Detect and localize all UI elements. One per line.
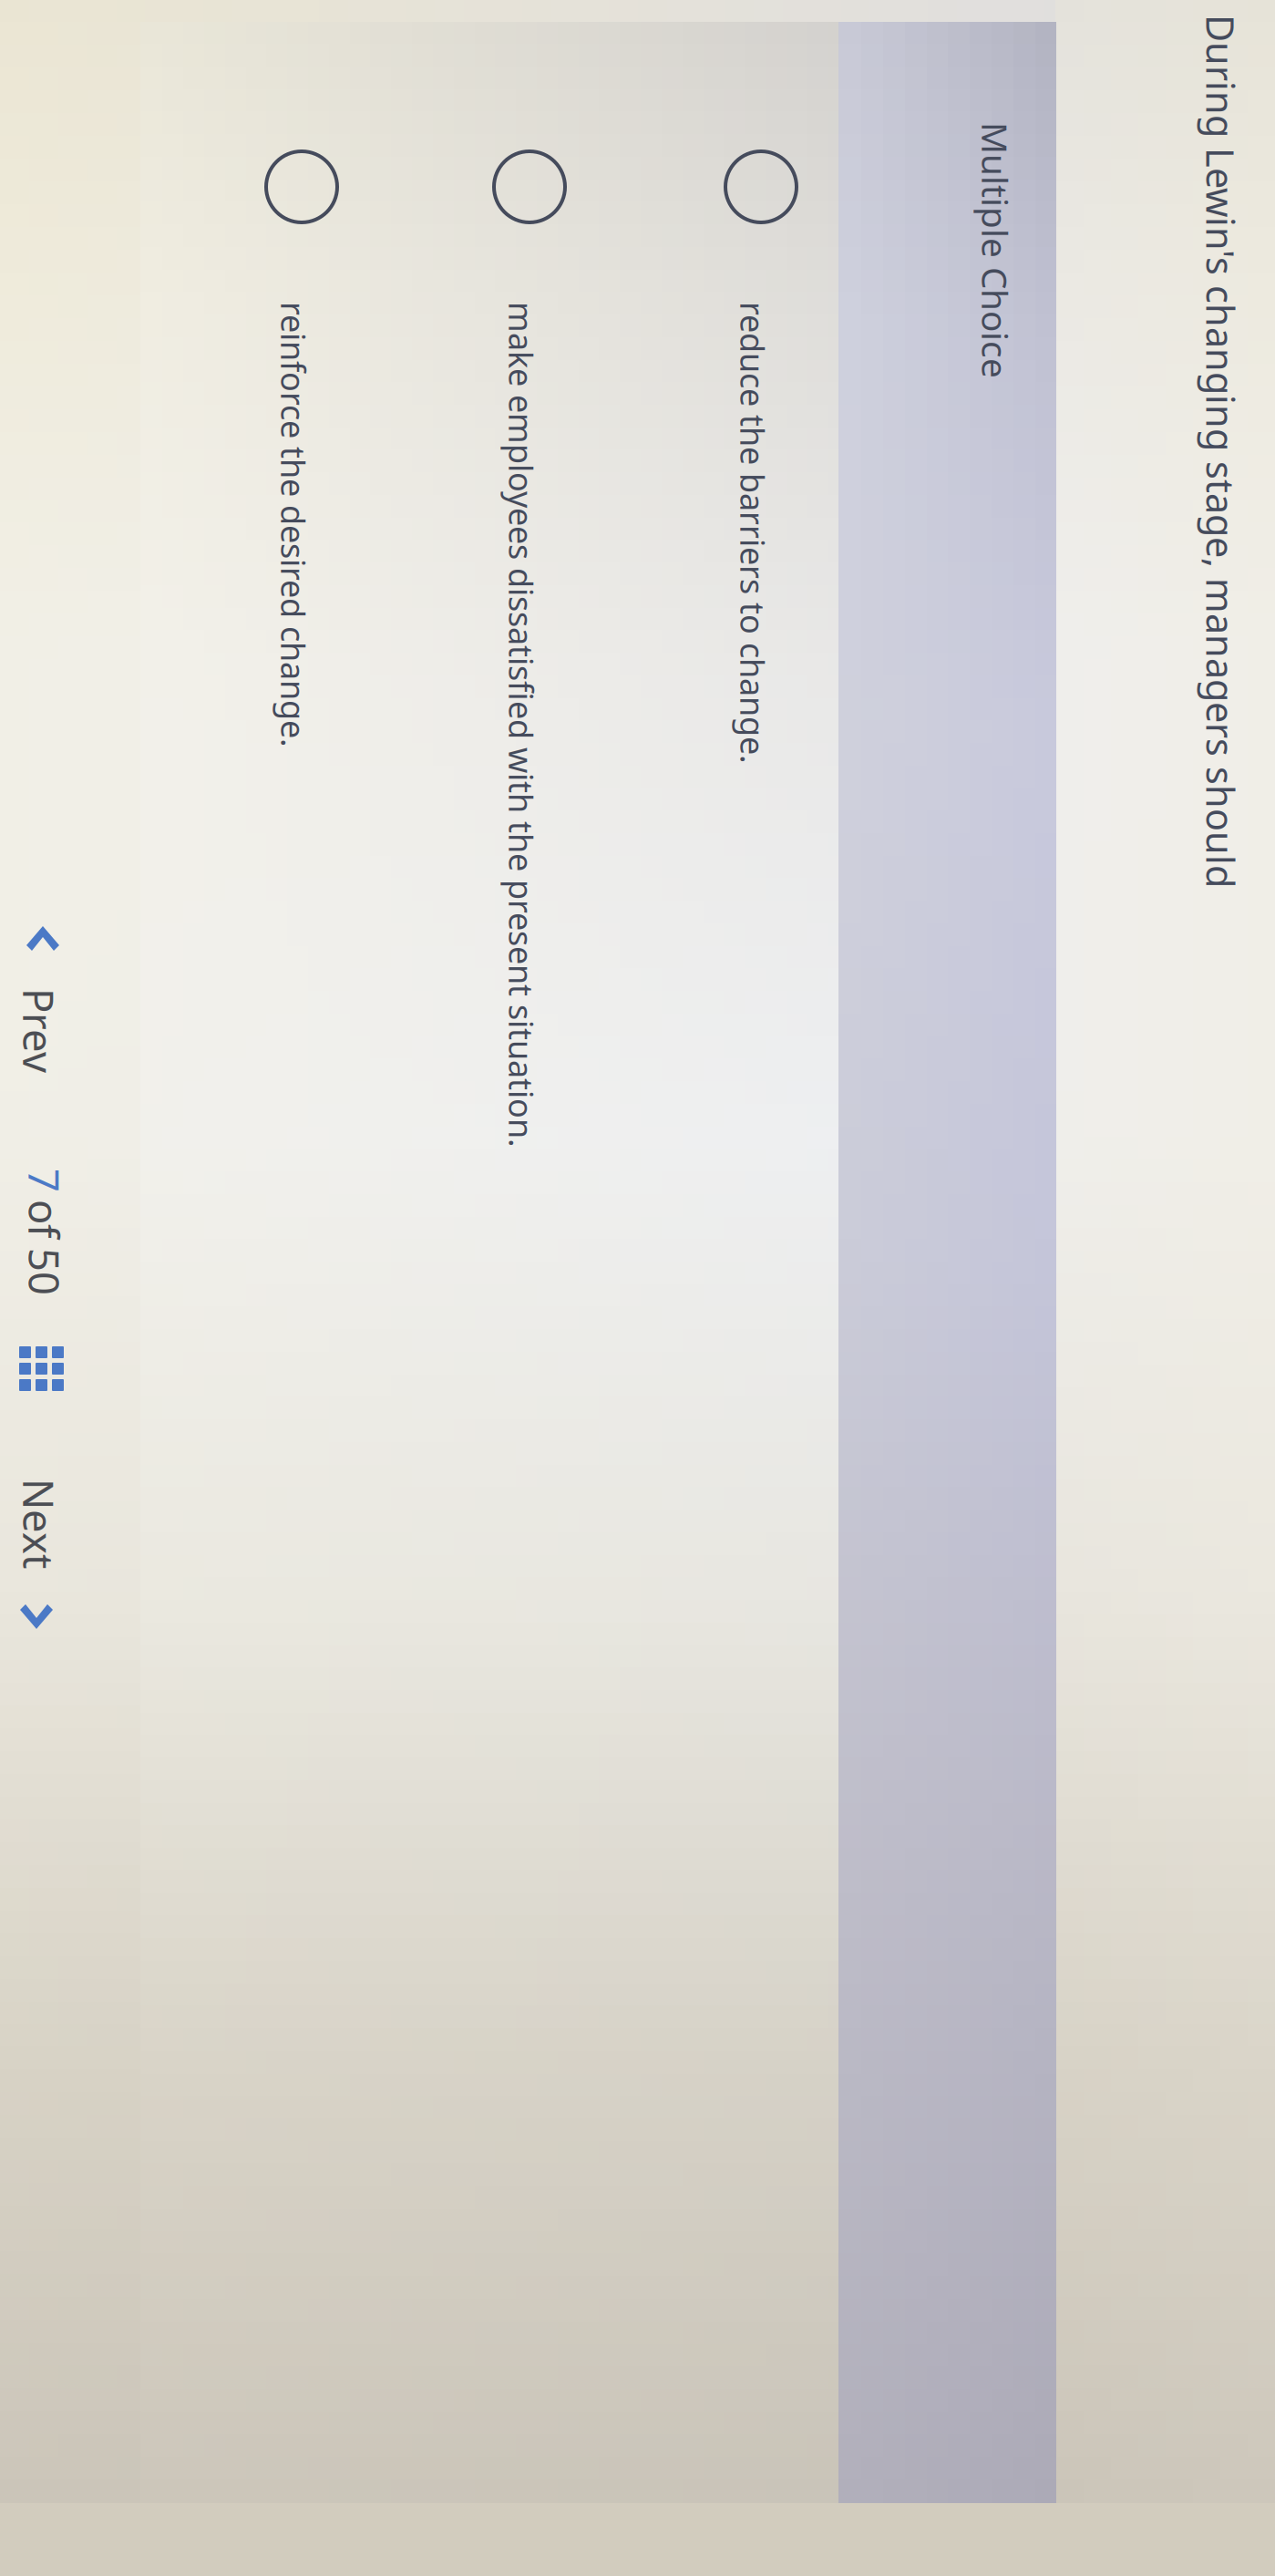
button[interactable]: reinforce the desired change.: [0, 1572, 1275, 1676]
staticText: reduce the barriers to change.: [0, 1151, 113, 1194]
staticText: Next: [828, 1859, 918, 1914]
staticText: make employees dissatisfied with the pre…: [0, 1382, 497, 1426]
staticText: reinforce the desired change.: [0, 1610, 97, 1654]
button[interactable]: make employees dissatisfied with the pre…: [0, 1344, 1275, 1448]
button[interactable]: reduce the barriers to change.: [0, 1113, 1275, 1216]
button[interactable]: Next: [821, 1850, 1003, 1919]
